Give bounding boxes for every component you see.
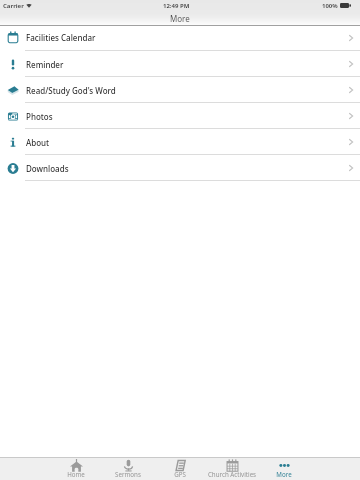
staticText: Facilities Calendar (26, 32, 96, 43)
staticText: GPS (154, 470, 206, 478)
other: Sermons (122, 459, 135, 472)
other: GPS (174, 459, 187, 472)
button[interactable]: Facilities Calendar (0, 26, 360, 51)
staticText: More (258, 470, 310, 478)
button[interactable]: Church Activities (206, 459, 258, 480)
button[interactable]: More (258, 459, 310, 480)
staticText: Home (50, 470, 102, 478)
staticText: More (170, 13, 190, 23)
staticText: Carrier (3, 2, 24, 10)
other: More (278, 459, 291, 472)
staticText: Reminder (26, 59, 64, 70)
staticText: Sermons (102, 470, 154, 478)
staticText: 12:49 PM (163, 2, 190, 10)
staticText: Church Activities (206, 470, 258, 478)
other: Church Activities (226, 459, 239, 472)
staticText: 100% (322, 2, 338, 10)
button[interactable]: Home (50, 459, 102, 480)
button[interactable]: Photos (0, 103, 360, 129)
staticText: Read/Study God's Word (26, 85, 116, 96)
staticText: About (26, 137, 50, 148)
button[interactable]: Downloads (0, 155, 360, 181)
staticText: Downloads (26, 163, 69, 174)
button[interactable]: About (0, 129, 360, 155)
staticText: Photos (26, 111, 53, 122)
other: Home (70, 459, 83, 472)
button[interactable]: GPS (154, 459, 206, 480)
button[interactable]: Reminder (0, 51, 360, 77)
button[interactable]: Sermons (102, 459, 154, 480)
button[interactable]: Read/Study God's Word (0, 77, 360, 103)
